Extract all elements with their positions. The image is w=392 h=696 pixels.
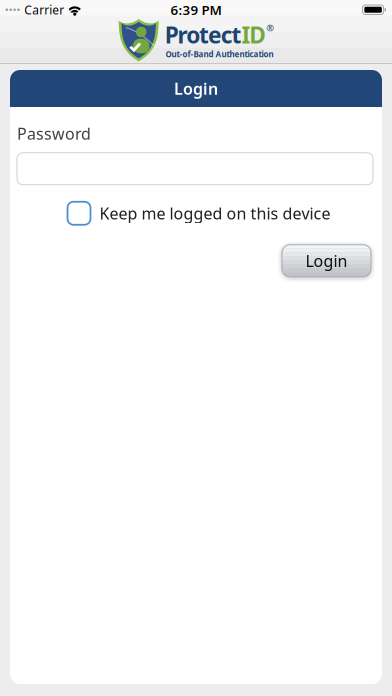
staticText: 6:39 PM (170, 1, 221, 19)
staticText: Login (305, 250, 347, 271)
button[interactable]: Password (17, 153, 373, 185)
staticText: Out-of-Band Authentication (165, 49, 273, 59)
button[interactable]: Login (282, 245, 371, 277)
staticText: ID (241, 20, 266, 50)
staticText: Password (17, 123, 91, 144)
staticText: Carrier (24, 2, 64, 18)
staticText: Keep me logged on this device (99, 203, 330, 224)
staticText: Login (174, 78, 218, 99)
staticText: ® (266, 22, 274, 34)
button[interactable]: Keep me logged on this device (67, 202, 330, 225)
staticText: Protect (165, 20, 241, 50)
